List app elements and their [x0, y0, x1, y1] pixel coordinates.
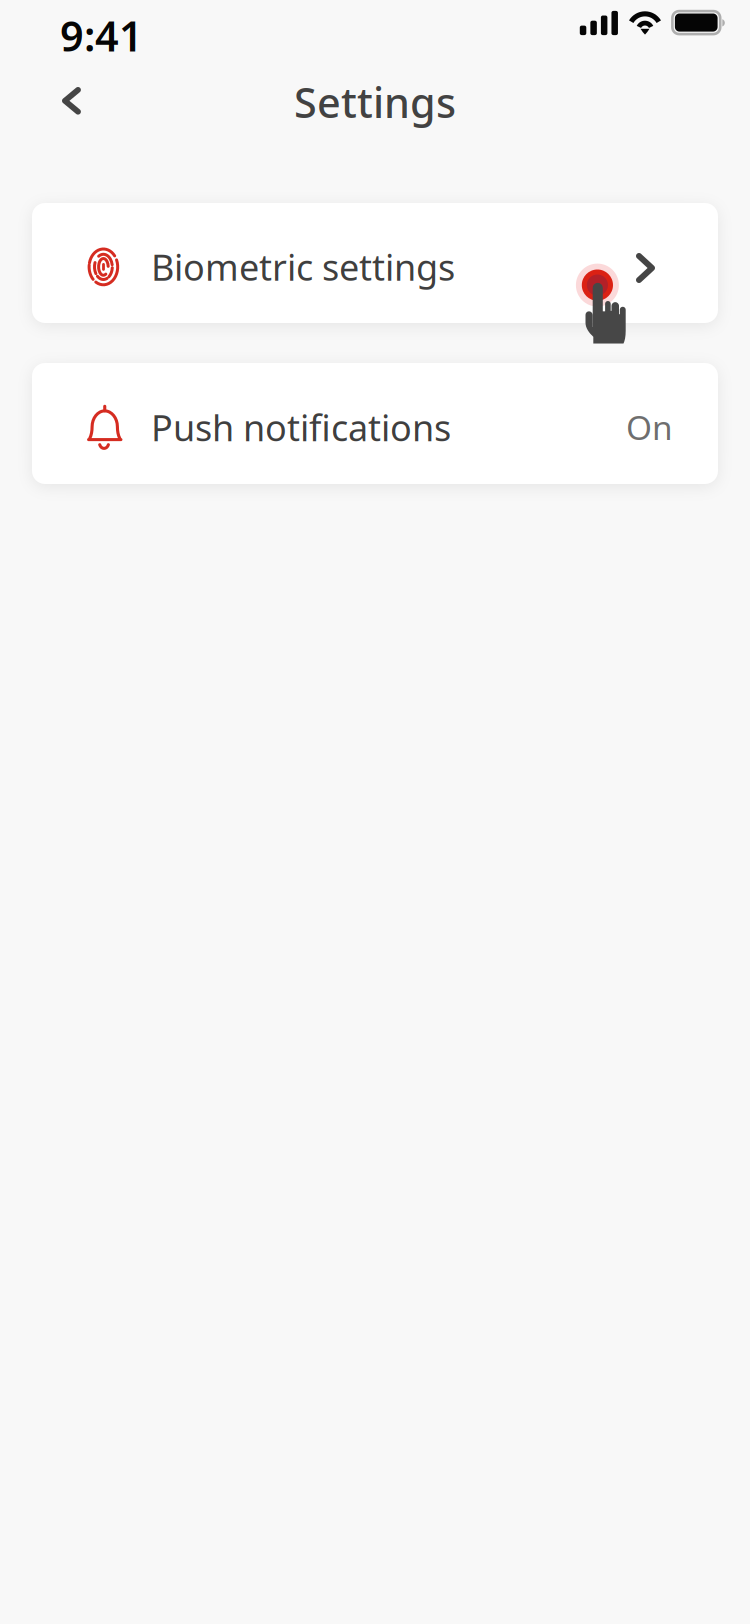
button[interactable]: Back — [39, 69, 103, 133]
staticText: 9:41 — [60, 8, 143, 63]
button[interactable]: Push notifications — [32, 363, 718, 484]
staticText: Biometric settings — [151, 243, 455, 291]
staticText: On — [626, 405, 673, 449]
button[interactable]: Biometric settings — [32, 203, 718, 323]
staticText: Push notifications — [151, 403, 451, 451]
staticText: Settings — [294, 75, 456, 129]
